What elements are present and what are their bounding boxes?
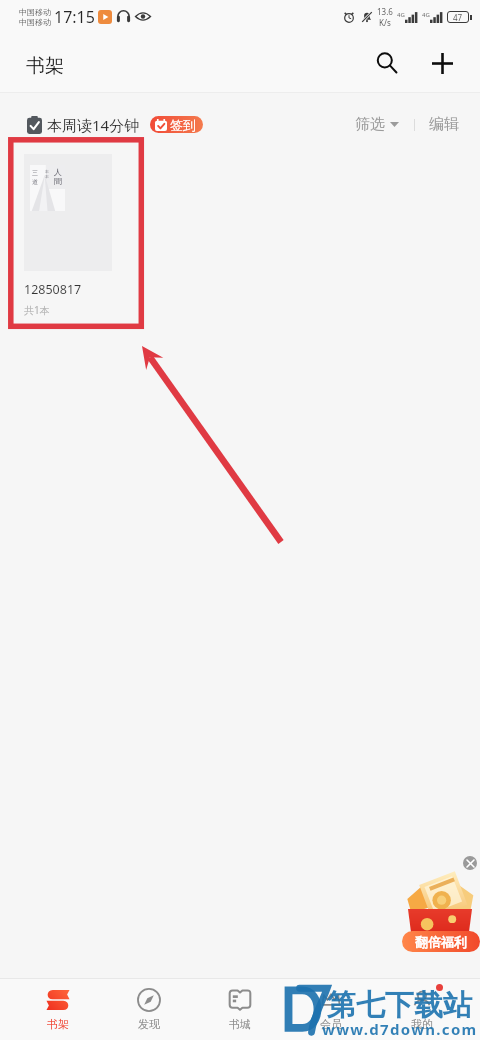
staticText: 4G [397,11,405,19]
staticText: 12850817 [24,281,82,298]
staticText: 13.6 [377,6,393,17]
staticText: www.d7down.com [322,1019,478,1039]
staticText: 中国移动 [19,7,51,17]
button[interactable]: 编辑 [429,111,459,138]
staticText: 47 [453,12,463,23]
staticText: 第七下载站 [327,987,472,1024]
button[interactable]: Add book [419,40,465,86]
staticText: 中国移动 [19,17,51,27]
button[interactable]: 书架 [12,979,103,1040]
button[interactable]: Double bonus [406,870,472,933]
button[interactable]: 签到 [150,116,203,133]
staticText: K/s [379,17,391,28]
staticText: 三 道 [32,169,38,186]
button[interactable]: Search [364,40,410,86]
button[interactable]: 我的 [376,979,467,1040]
button[interactable]: 发现 [103,979,194,1040]
button[interactable]: 三 道 [24,154,112,317]
staticText: 筛选 [355,115,385,134]
button[interactable]: 筛选 [355,111,399,138]
staticText: 人 間 [54,167,62,187]
staticText: 丰 丰 [45,169,49,180]
staticText: 17:15 [54,6,95,28]
button[interactable]: 会员 [285,979,376,1040]
staticText: 书架 [47,1017,69,1031]
staticText: 书架 [26,54,64,78]
staticText: 会员 [320,1017,342,1031]
button[interactable]: Close promotion [463,856,477,870]
staticText: 翻倍福利 [415,934,467,950]
staticText: 发现 [138,1017,160,1031]
staticText: 4G [422,11,430,19]
staticText: 签到 [170,117,196,133]
staticText: 共1本 [24,303,50,317]
staticText: 书城 [229,1017,251,1031]
button[interactable]: 书城 [194,979,285,1040]
button[interactable]: 翻倍福利 [402,931,480,952]
staticText: 本周读14分钟 [47,115,140,135]
staticText: 我的 [411,1017,433,1031]
